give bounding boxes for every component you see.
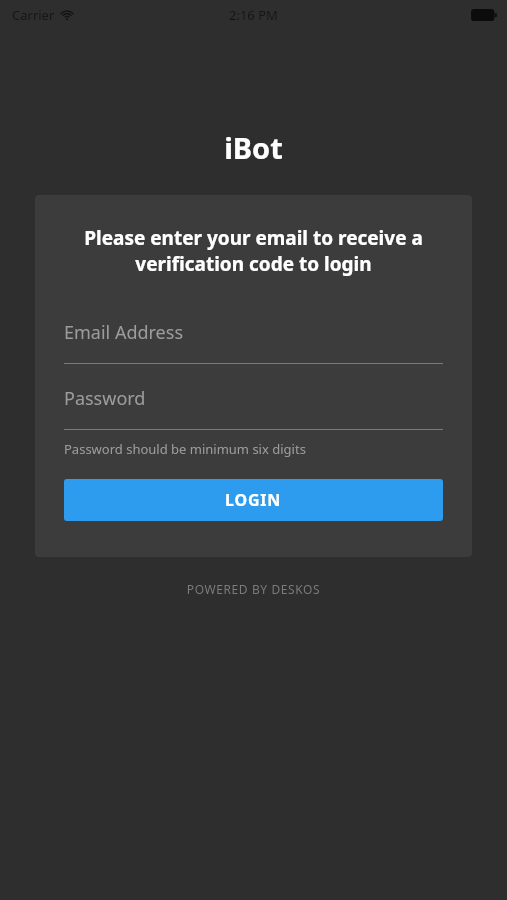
staticText: POWERED BY DESKOS <box>0 581 507 597</box>
other: Battery full <box>471 9 497 21</box>
staticText: LOGIN <box>225 489 282 511</box>
staticText: Carrier <box>12 6 55 24</box>
staticText: 2:16 PM <box>229 6 278 24</box>
staticText: iBot <box>0 128 507 167</box>
staticText: Please enter your email to receive a ver… <box>64 225 443 277</box>
staticText: Email Address <box>64 320 184 345</box>
staticText: Password <box>64 386 146 411</box>
button[interactable]: Email Address <box>64 320 443 364</box>
button[interactable]: LOGIN <box>64 479 443 521</box>
staticText: Password should be minimum six digits <box>64 440 306 458</box>
button[interactable]: Password <box>64 386 443 430</box>
other: Wi-Fi signal <box>60 8 74 22</box>
